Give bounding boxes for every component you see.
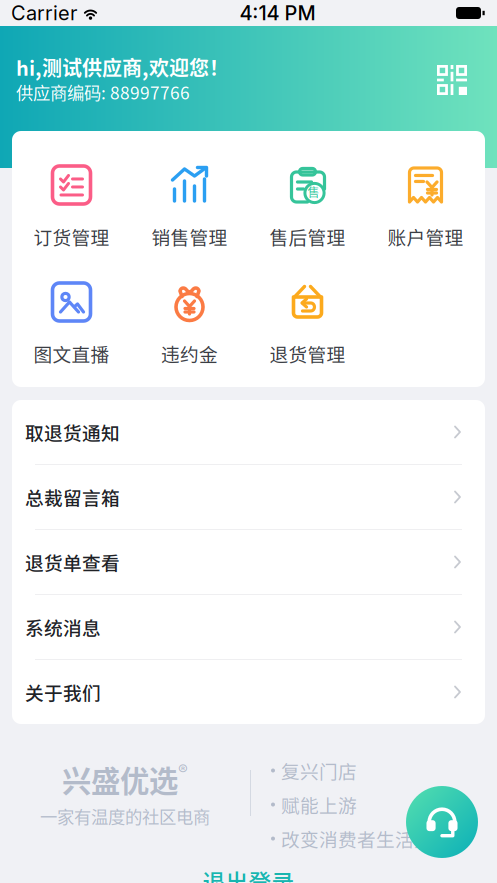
staticText: 退货管理 [269, 340, 345, 367]
button[interactable]: 退货管理 [248, 264, 366, 381]
staticText: 总裁留言箱 [25, 483, 120, 510]
button[interactable]: 图文直播 [12, 264, 130, 381]
button[interactable]: 账户管理 [366, 147, 484, 264]
staticText: 复兴门店 [281, 757, 357, 784]
staticText: 账户管理 [387, 223, 463, 250]
staticText: 系统消息 [25, 613, 101, 640]
staticText: 售后管理 [269, 223, 345, 250]
staticText: 售 [307, 183, 319, 201]
staticText: 4:14 PM [239, 1, 315, 25]
button[interactable]: 退货单查看 [12, 530, 485, 595]
staticText: 销售管理 [151, 223, 227, 250]
staticText: ® [178, 761, 188, 779]
button[interactable]: 扫一扫 [437, 65, 467, 95]
button[interactable]: 总裁留言箱 [12, 465, 485, 530]
staticText: Carrier [11, 1, 77, 25]
button[interactable]: 销售管理 [130, 147, 248, 264]
staticText: 改变消费者生活方式 [281, 825, 452, 852]
staticText: 图文直播 [33, 340, 109, 367]
staticText: 赋能上游 [281, 791, 357, 818]
button[interactable]: 关于我们 [12, 660, 485, 724]
button[interactable]: 取退货通知 [12, 400, 485, 465]
staticText: 订货管理 [33, 223, 109, 250]
staticText: 退出登录 [202, 865, 294, 883]
staticText: 一家有温度的社区电商 [40, 803, 210, 829]
button[interactable]: 违约金 [130, 264, 248, 381]
staticText: 兴盛优选 [62, 758, 178, 800]
button[interactable]: 订货管理 [12, 147, 130, 264]
staticText: 供应商编码: 88997766 [16, 79, 190, 104]
staticText: 违约金 [161, 340, 218, 367]
staticText: 关于我们 [25, 678, 101, 705]
button[interactable]: 在线客服 [406, 786, 478, 858]
staticText: 取退货通知 [25, 418, 120, 445]
button[interactable]: 系统消息 [12, 595, 485, 660]
staticText: 退货单查看 [25, 548, 120, 575]
staticText: hi,测试供应商,欢迎您！ [16, 52, 229, 81]
button[interactable]: 售 [248, 147, 366, 264]
button[interactable]: 退出登录 [0, 866, 497, 883]
